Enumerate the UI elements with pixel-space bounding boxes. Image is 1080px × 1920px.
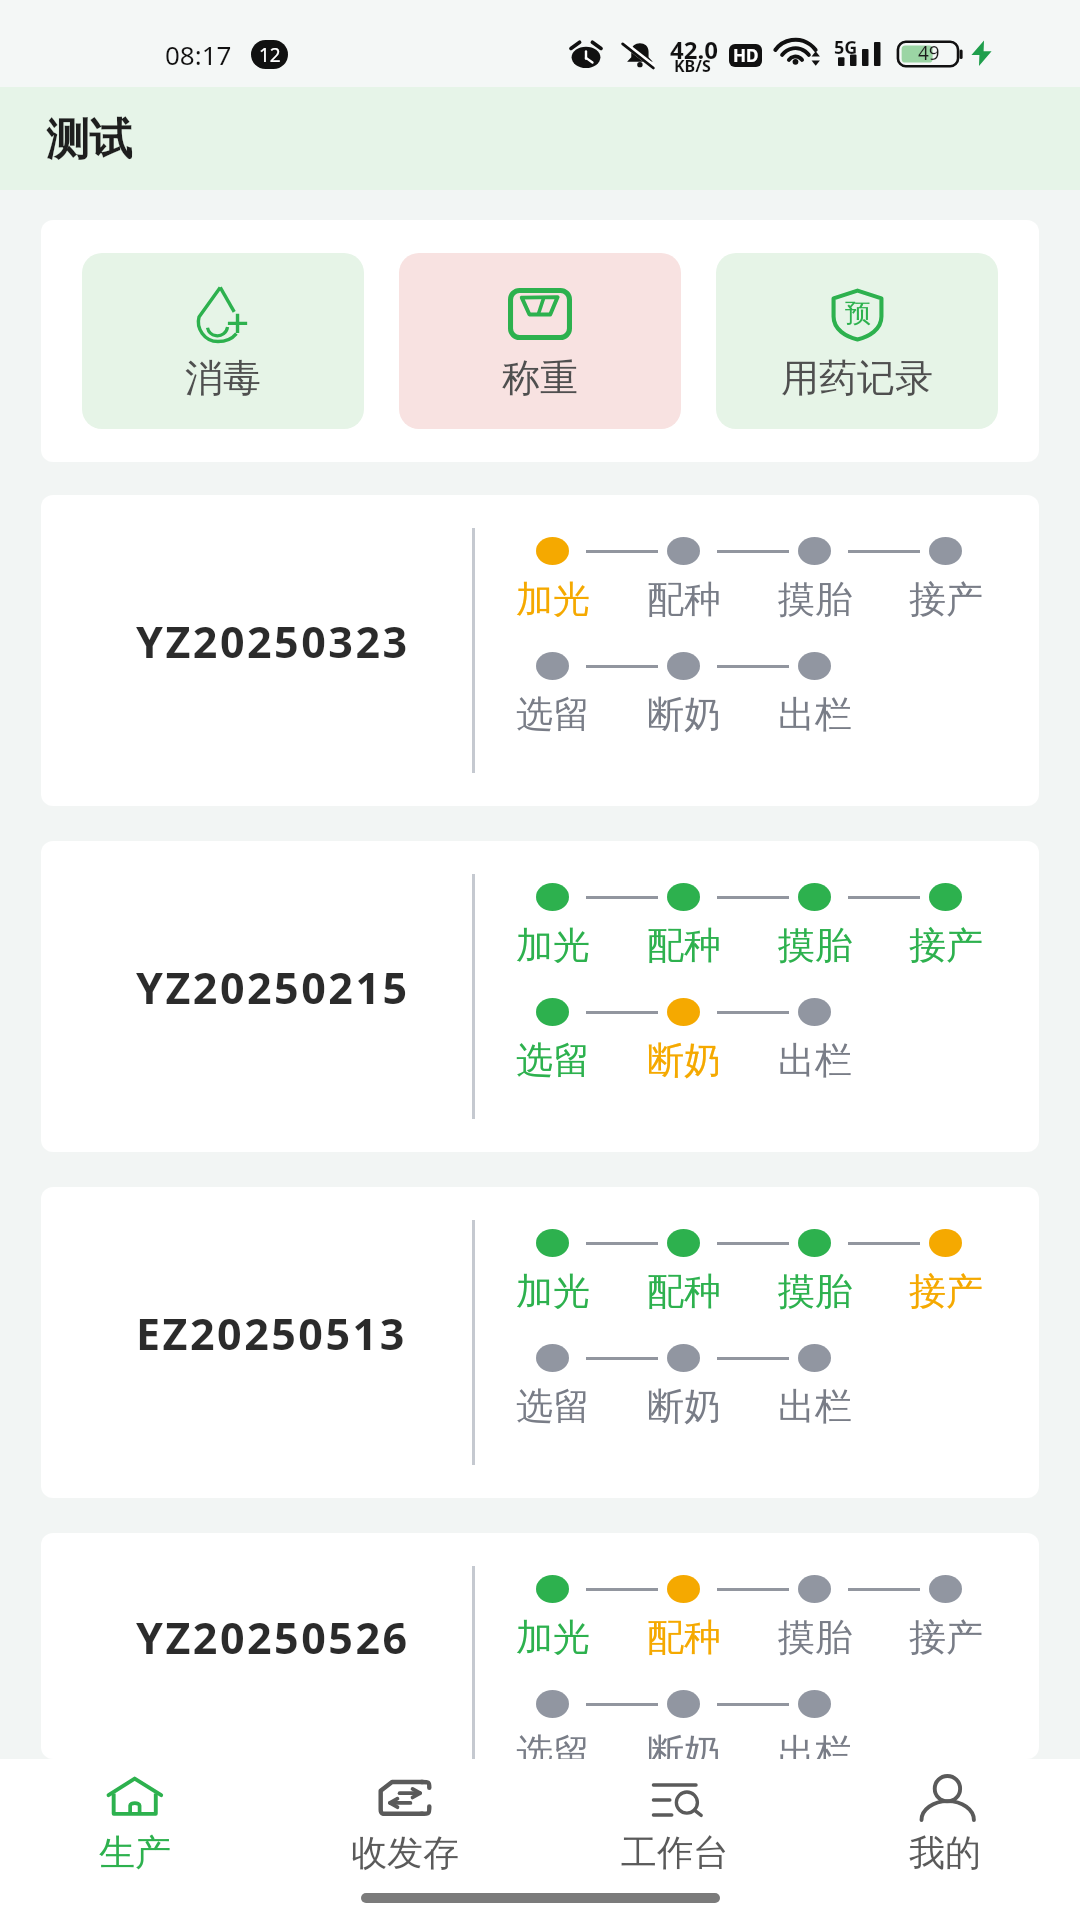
- staticText: 接产: [909, 922, 983, 966]
- staticText: 预: [845, 297, 871, 330]
- staticText: 42.0: [670, 33, 718, 66]
- staticText: 摸胎: [778, 1614, 852, 1658]
- staticText: 我的: [909, 1830, 981, 1875]
- staticText: YZ20250323: [136, 612, 410, 671]
- staticText: 断奶: [647, 1037, 721, 1081]
- button[interactable]: Production: [0, 1759, 270, 1879]
- button[interactable]: YZ20250323: [41, 495, 1039, 806]
- staticText: 工作台: [621, 1830, 729, 1875]
- button[interactable]: EZ20250513: [41, 1187, 1039, 1498]
- staticText: 配种: [647, 576, 721, 620]
- button[interactable]: Mine: [810, 1759, 1080, 1879]
- staticText: 加光: [516, 1268, 590, 1312]
- staticText: 加光: [516, 922, 590, 966]
- staticText: EZ20250513: [136, 1304, 407, 1363]
- staticText: 断奶: [647, 1729, 721, 1759]
- staticText: 选留: [516, 1729, 590, 1759]
- staticText: 08:17: [165, 37, 232, 72]
- staticText: 选留: [516, 1037, 590, 1081]
- staticText: 用药记录: [781, 354, 933, 402]
- staticText: 出栏: [778, 1729, 852, 1759]
- button[interactable]: 消毒: [82, 253, 364, 429]
- staticText: 49: [918, 40, 940, 66]
- staticText: 摸胎: [778, 1268, 852, 1312]
- staticText: 测试: [46, 113, 132, 167]
- staticText: 接产: [909, 576, 983, 620]
- staticText: 配种: [647, 1614, 721, 1658]
- button[interactable]: 称重: [399, 253, 681, 429]
- button[interactable]: Workbench: [540, 1759, 810, 1879]
- button[interactable]: Inventory: [270, 1759, 540, 1879]
- staticText: 消毒: [185, 354, 261, 402]
- staticText: 出栏: [778, 1037, 852, 1081]
- button[interactable]: YZ20250526: [41, 1533, 1039, 1759]
- staticText: 选留: [516, 1383, 590, 1427]
- staticText: 断奶: [647, 1383, 721, 1427]
- staticText: HD: [733, 44, 759, 67]
- staticText: YZ20250215: [136, 958, 410, 1017]
- staticText: 加光: [516, 1614, 590, 1658]
- other: Mine: [918, 1776, 972, 1815]
- staticText: 收发存: [351, 1830, 459, 1875]
- staticText: 加光: [516, 576, 590, 620]
- staticText: 断奶: [647, 691, 721, 735]
- staticText: 摸胎: [778, 576, 852, 620]
- staticText: 接产: [909, 1268, 983, 1312]
- other: Inventory: [378, 1776, 432, 1815]
- staticText: 生产: [99, 1830, 171, 1875]
- staticText: 出栏: [778, 691, 852, 735]
- staticText: YZ20250526: [136, 1608, 410, 1667]
- staticText: 配种: [647, 922, 721, 966]
- staticText: KB/S: [674, 55, 711, 77]
- other: Workbench: [648, 1776, 702, 1815]
- staticText: 出栏: [778, 1383, 852, 1427]
- staticText: 5G: [834, 35, 858, 60]
- other: Production: [108, 1776, 162, 1815]
- staticText: 接产: [909, 1614, 983, 1658]
- staticText: 称重: [502, 354, 578, 402]
- button[interactable]: YZ20250215: [41, 841, 1039, 1152]
- staticText: 选留: [516, 691, 590, 735]
- button[interactable]: 预: [716, 253, 998, 429]
- staticText: 配种: [647, 1268, 721, 1312]
- staticText: 摸胎: [778, 922, 852, 966]
- staticText: 12: [259, 42, 281, 68]
